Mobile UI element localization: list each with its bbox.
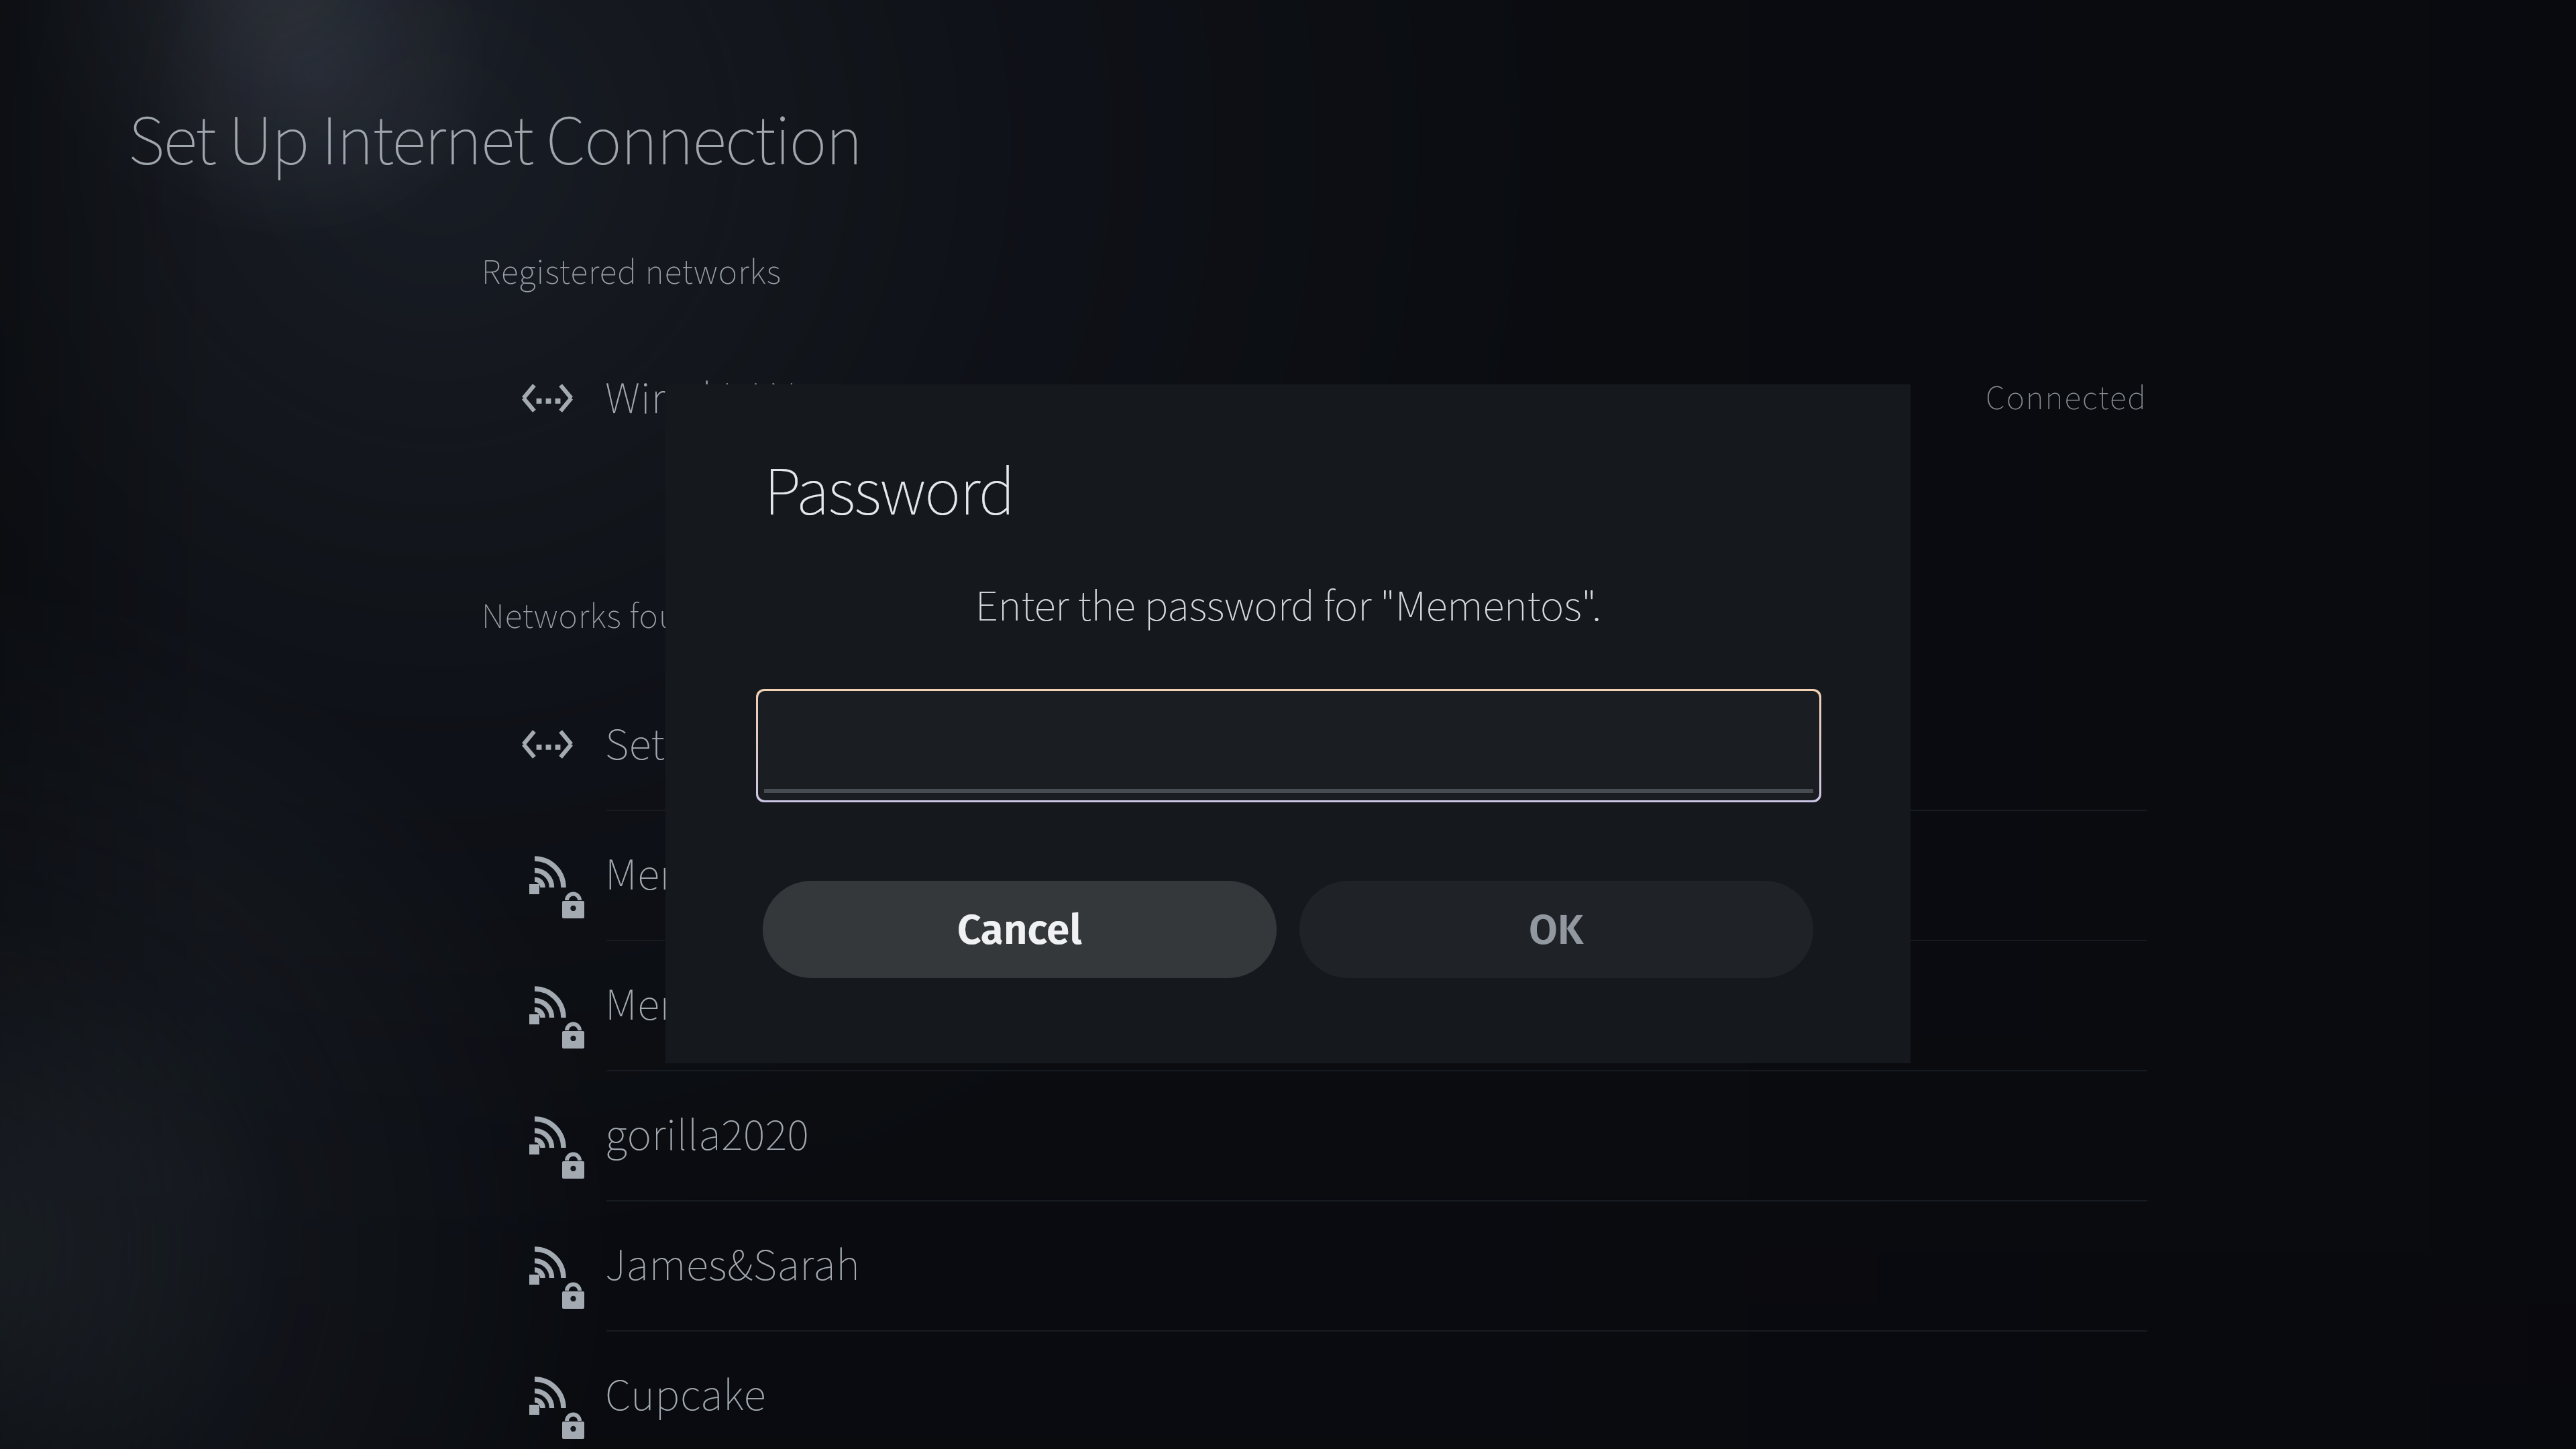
staticText: Connected: [1986, 374, 2147, 423]
staticText: Registered networks: [482, 248, 782, 298]
staticText: Cancel: [957, 905, 1082, 955]
staticText: gorilla2020: [605, 1103, 810, 1168]
button[interactable]: Password entry field: [758, 691, 1819, 800]
button[interactable]: Secured Wi-Fi network: [470, 1200, 2147, 1330]
other: Secured Wi-Fi network: [529, 1246, 586, 1310]
other: Secured Wi-Fi network: [529, 1116, 586, 1180]
button[interactable]: Secured Wi-Fi network: [470, 940, 2147, 1070]
other: Secured Wi-Fi network: [529, 856, 586, 920]
staticText: OK: [1529, 905, 1584, 955]
staticText: Wired LAN: [605, 366, 798, 431]
staticText: Networks found: [482, 592, 718, 642]
other: Wired network: [521, 382, 574, 415]
staticText: Set Up Internet Connection: [128, 92, 862, 193]
other: Wired network: [521, 729, 574, 761]
button[interactable]: Wired network: [470, 680, 2147, 810]
staticText: Cupcake: [605, 1363, 766, 1428]
other: Secured Wi-Fi network: [529, 986, 586, 1050]
other: Secured Wi-Fi network: [529, 1377, 586, 1440]
staticText: Set Up Manually: [605, 712, 907, 777]
button[interactable]: Secured Wi-Fi network: [470, 810, 2147, 940]
staticText: Mementos_5G: [605, 973, 874, 1038]
button[interactable]: Wired network: [470, 333, 2147, 464]
button[interactable]: OK: [1299, 881, 1813, 978]
staticText: Password: [764, 445, 1014, 542]
button[interactable]: Secured Wi-Fi network: [470, 1330, 2147, 1449]
button[interactable]: Cancel: [763, 881, 1277, 978]
staticText: James&Sarah: [605, 1233, 861, 1298]
staticText: Enter the password for "Mementos".: [975, 575, 1601, 638]
staticText: Mementos: [605, 843, 801, 908]
button[interactable]: Secured Wi-Fi network: [470, 1070, 2147, 1200]
